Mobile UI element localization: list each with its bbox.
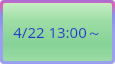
staticText: 4/22 13:00～ [13, 22, 102, 42]
button[interactable]: 4/22 13:00～ [0, 0, 115, 64]
